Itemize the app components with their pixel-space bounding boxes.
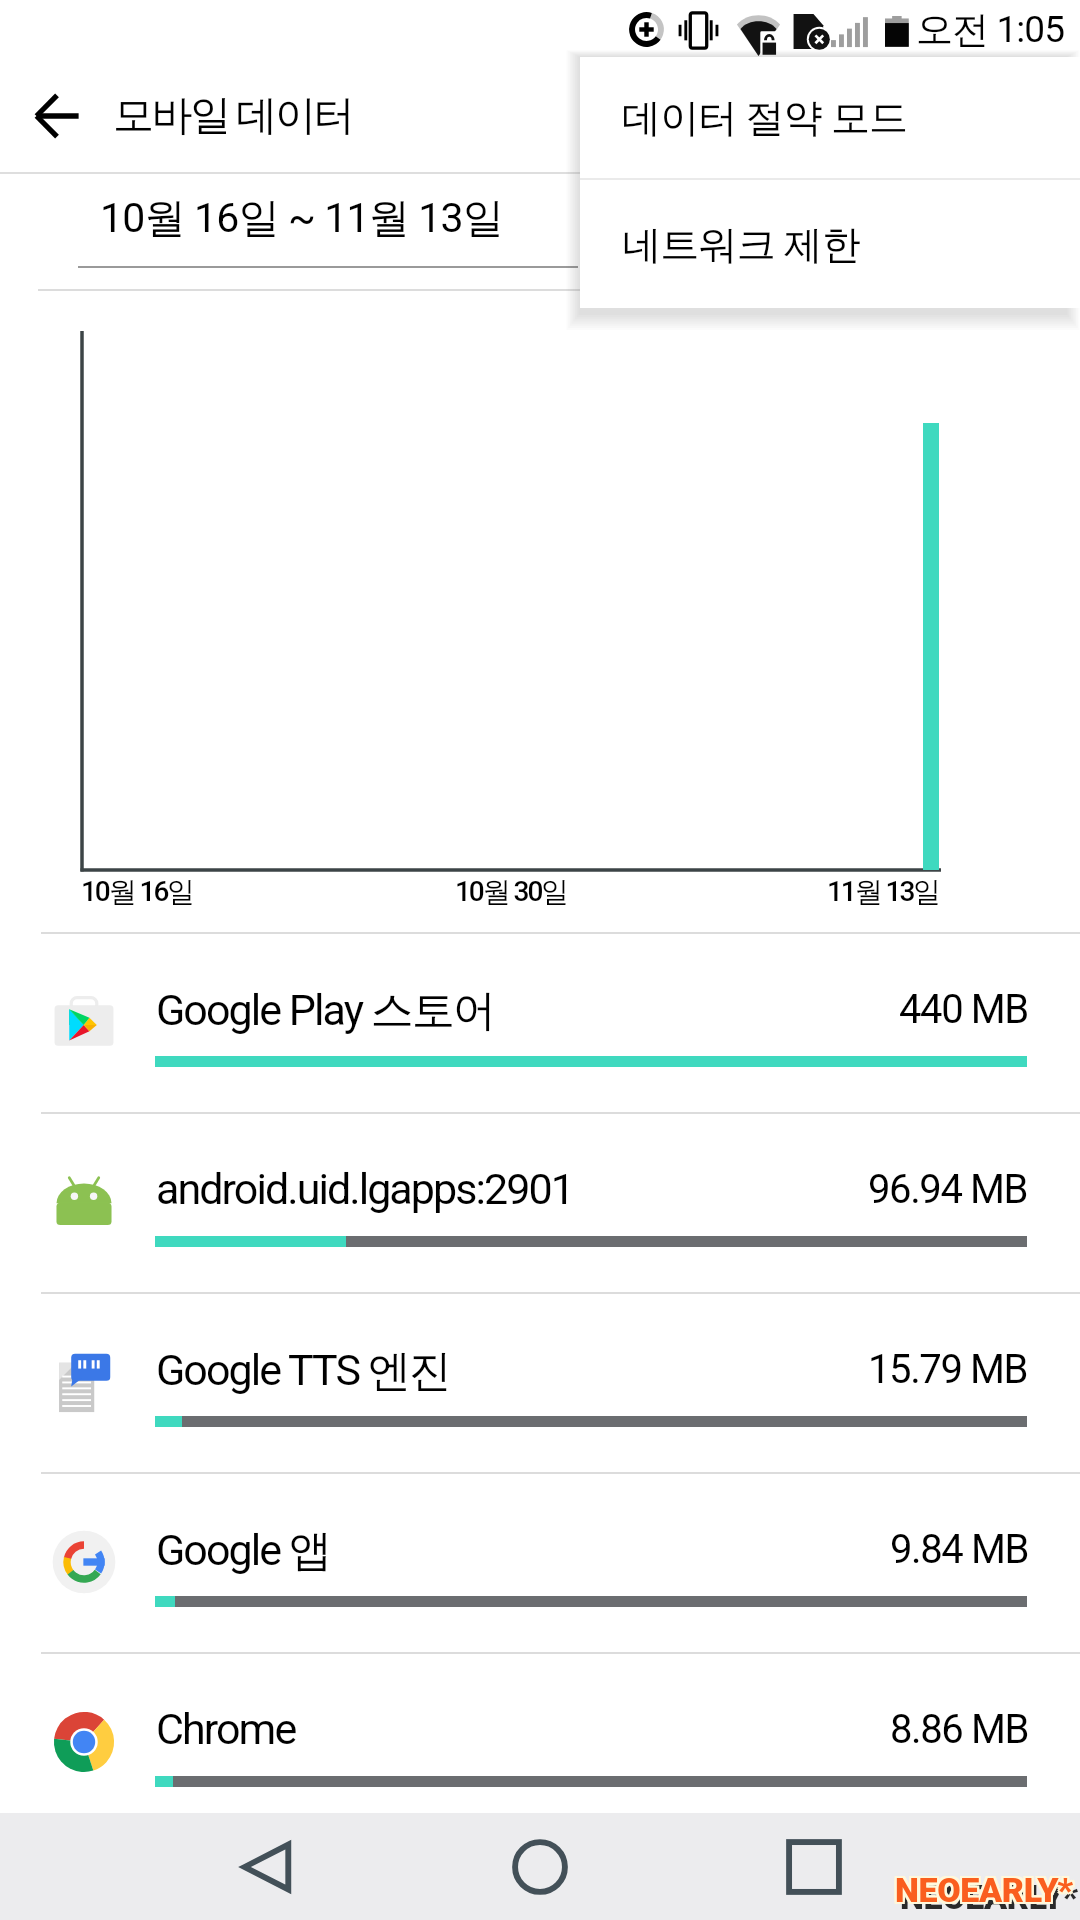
staticText: 11월 13일 bbox=[827, 874, 940, 909]
staticText: android.uid.lgapps:2901 bbox=[156, 1164, 573, 1214]
staticText: 10월 16일 bbox=[81, 874, 194, 909]
staticText: NEOEARLY* bbox=[893, 1868, 1071, 1908]
button[interactable]: 10월 16일 ~ 11월 13일 bbox=[78, 182, 578, 268]
staticText: 440 MB bbox=[899, 986, 1028, 1033]
button[interactable]: 데이터 절약 모드 bbox=[580, 57, 1080, 178]
button[interactable]: Back bbox=[2, 61, 112, 171]
staticText: 96.94 MB bbox=[868, 1166, 1028, 1213]
staticText: 9.84 MB bbox=[890, 1526, 1028, 1573]
button[interactable]: Google TTS 엔진 bbox=[0, 1294, 1080, 1472]
staticText: NEOEARLY* bbox=[895, 1870, 1073, 1910]
staticText: NEOEARLY* bbox=[897, 1870, 1075, 1910]
button[interactable]: Back bbox=[212, 1813, 322, 1920]
staticText: 데이터 절약 모드 bbox=[622, 93, 908, 142]
staticText: 10월 30일 bbox=[455, 874, 568, 909]
staticText: Google Play 스토어 bbox=[156, 984, 495, 1038]
staticText: NEOEARLY* bbox=[893, 1872, 1071, 1912]
staticText: NEOEARLY* bbox=[895, 1868, 1073, 1908]
staticText: 8.86 MB bbox=[890, 1706, 1028, 1753]
staticText: 10월 16일 ~ 11월 13일 bbox=[100, 193, 503, 245]
button[interactable]: Recents bbox=[759, 1813, 869, 1920]
staticText: Google 앱 bbox=[156, 1524, 330, 1578]
button[interactable]: android.uid.lgapps:2901 bbox=[0, 1114, 1080, 1292]
button[interactable]: Google Play 스토어 bbox=[0, 934, 1080, 1112]
button[interactable]: Google 앱 bbox=[0, 1474, 1080, 1652]
button[interactable]: Home bbox=[485, 1813, 595, 1920]
staticText: 15.79 MB bbox=[868, 1346, 1028, 1393]
button[interactable]: 네트워크 제한 bbox=[580, 180, 1080, 308]
staticText: NEOEARLY* bbox=[895, 1872, 1073, 1912]
staticText: NEOEARLY* bbox=[897, 1868, 1075, 1908]
staticText: NEOEARLY* bbox=[893, 1870, 1071, 1910]
button[interactable]: Chrome bbox=[0, 1654, 1080, 1832]
staticText: Google TTS 엔진 bbox=[156, 1344, 450, 1398]
staticText: 모바일 데이터 bbox=[113, 90, 352, 142]
staticText: Chrome bbox=[156, 1704, 296, 1754]
staticText: 오전 1:05 bbox=[916, 6, 1065, 53]
staticText: NEOEARLY* bbox=[900, 1877, 1078, 1917]
staticText: NEOEARLY* bbox=[897, 1872, 1075, 1912]
staticText: 네트워크 제한 bbox=[622, 220, 861, 269]
